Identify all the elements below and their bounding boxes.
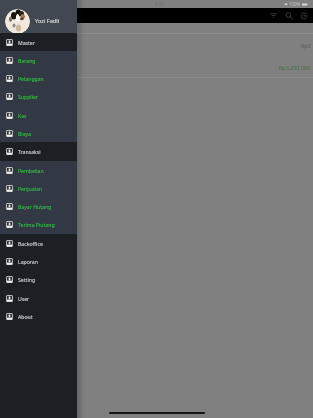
staticText: Yozi Fadli [35,17,60,25]
button[interactable]: Setting [0,270,77,289]
button[interactable]: Backoffice [0,234,77,253]
staticText: Backoffice [18,240,43,247]
button[interactable]: Barang [0,51,77,70]
staticText: Barang [18,57,36,64]
staticText: About [18,313,33,320]
staticText: Terima Piutang [18,221,55,228]
button[interactable]: Filter [266,8,281,23]
staticText: Penjualan [18,185,42,192]
staticText: Pelanggan [18,75,44,82]
button[interactable]: Laporan [0,252,77,271]
staticText: Pembelian [18,167,44,174]
staticText: Bayar Hutang [18,203,52,210]
staticText: Rp0 [301,42,311,49]
staticText: Biaya [18,130,32,137]
button[interactable]: Master [0,33,77,52]
staticText: 4:12 [155,1,164,7]
staticText: Rp3.250.000 [279,64,311,71]
staticText: Supplier [18,93,38,100]
button[interactable]: More options [296,8,311,23]
staticText: Setting [18,276,36,283]
button[interactable]: Rp0 [0,33,313,78]
staticText: Master [18,39,35,46]
staticText: Laporan [18,258,38,265]
button[interactable]: Supplier [0,87,77,106]
button[interactable]: Search [281,8,296,23]
button[interactable]: About [0,307,77,326]
button[interactable]: Terima Piutang [0,215,77,234]
staticText: Kas [18,112,27,119]
button[interactable]: Transaksi [0,142,77,161]
button[interactable]: Pelanggan [0,69,77,88]
button[interactable]: Pembelian [0,161,77,180]
button[interactable]: User [0,289,77,308]
staticText: User [18,295,30,302]
button[interactable]: Biaya [0,124,77,143]
staticText: Transaksi [18,148,41,155]
staticText: 100% [289,1,301,7]
button[interactable]: Kas [0,106,77,125]
button[interactable]: Bayar Hutang [0,197,77,216]
button[interactable]: Penjualan [0,179,77,198]
